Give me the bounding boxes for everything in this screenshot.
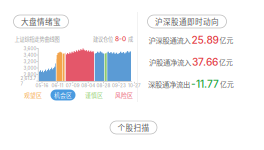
- staticText: 8-0: [113, 35, 128, 43]
- staticText: 亿元: [220, 79, 234, 89]
- staticText: 10-27: [128, 83, 141, 88]
- staticText: 37.66: [192, 56, 218, 68]
- staticText: [218, 38, 219, 42]
- staticText: 06-11: [51, 83, 63, 88]
- staticText: 沪股通净流入: [149, 57, 191, 67]
- staticText: 建议仓位: [93, 35, 113, 43]
- button[interactable]: 个股扫描: [110, 121, 157, 134]
- staticText: 2,800: [23, 72, 36, 77]
- button[interactable]: 机会区: [50, 90, 75, 100]
- staticText: 个股扫描: [117, 122, 149, 133]
- staticText: 08-04: [81, 83, 95, 88]
- staticText: 3,600: [23, 46, 36, 51]
- button[interactable]: 风险区: [111, 90, 136, 100]
- staticText: 沪深股通流入: [148, 35, 190, 45]
- button[interactable]: 观望区: [20, 90, 45, 100]
- staticText: 3,200: [23, 59, 36, 64]
- staticText: 09-23: [112, 83, 126, 88]
- button[interactable]: 大盘情绪宝: [13, 15, 68, 28]
- staticText: 成: [128, 35, 133, 43]
- staticText: 07-09: [66, 83, 80, 88]
- staticText: -11.77: [191, 78, 219, 90]
- staticText: 沪深股通即时动向: [155, 16, 219, 27]
- staticText: 3,000: [23, 65, 36, 71]
- staticText: 风险区: [115, 91, 133, 99]
- staticText: 大盘情绪宝: [21, 16, 61, 27]
- staticText: 25.89: [191, 34, 218, 46]
- staticText: 3,400: [23, 52, 36, 58]
- button[interactable]: 谨慎区: [81, 90, 106, 100]
- staticText: 05-16: [35, 83, 48, 88]
- staticText: 亿元: [219, 57, 233, 67]
- staticText: 观望区: [24, 91, 42, 99]
- staticText: 深股通净流出: [148, 79, 190, 89]
- staticText: 谨慎区: [85, 91, 103, 99]
- staticText: 机会区: [54, 91, 72, 99]
- staticText: 亿元: [219, 35, 233, 45]
- staticText: 上证综指走势曲线图: [14, 35, 59, 43]
- staticText: 2,613.77: [20, 75, 36, 86]
- button[interactable]: 沪深股通即时动向: [147, 15, 226, 28]
- staticText: 08-28: [97, 83, 111, 88]
